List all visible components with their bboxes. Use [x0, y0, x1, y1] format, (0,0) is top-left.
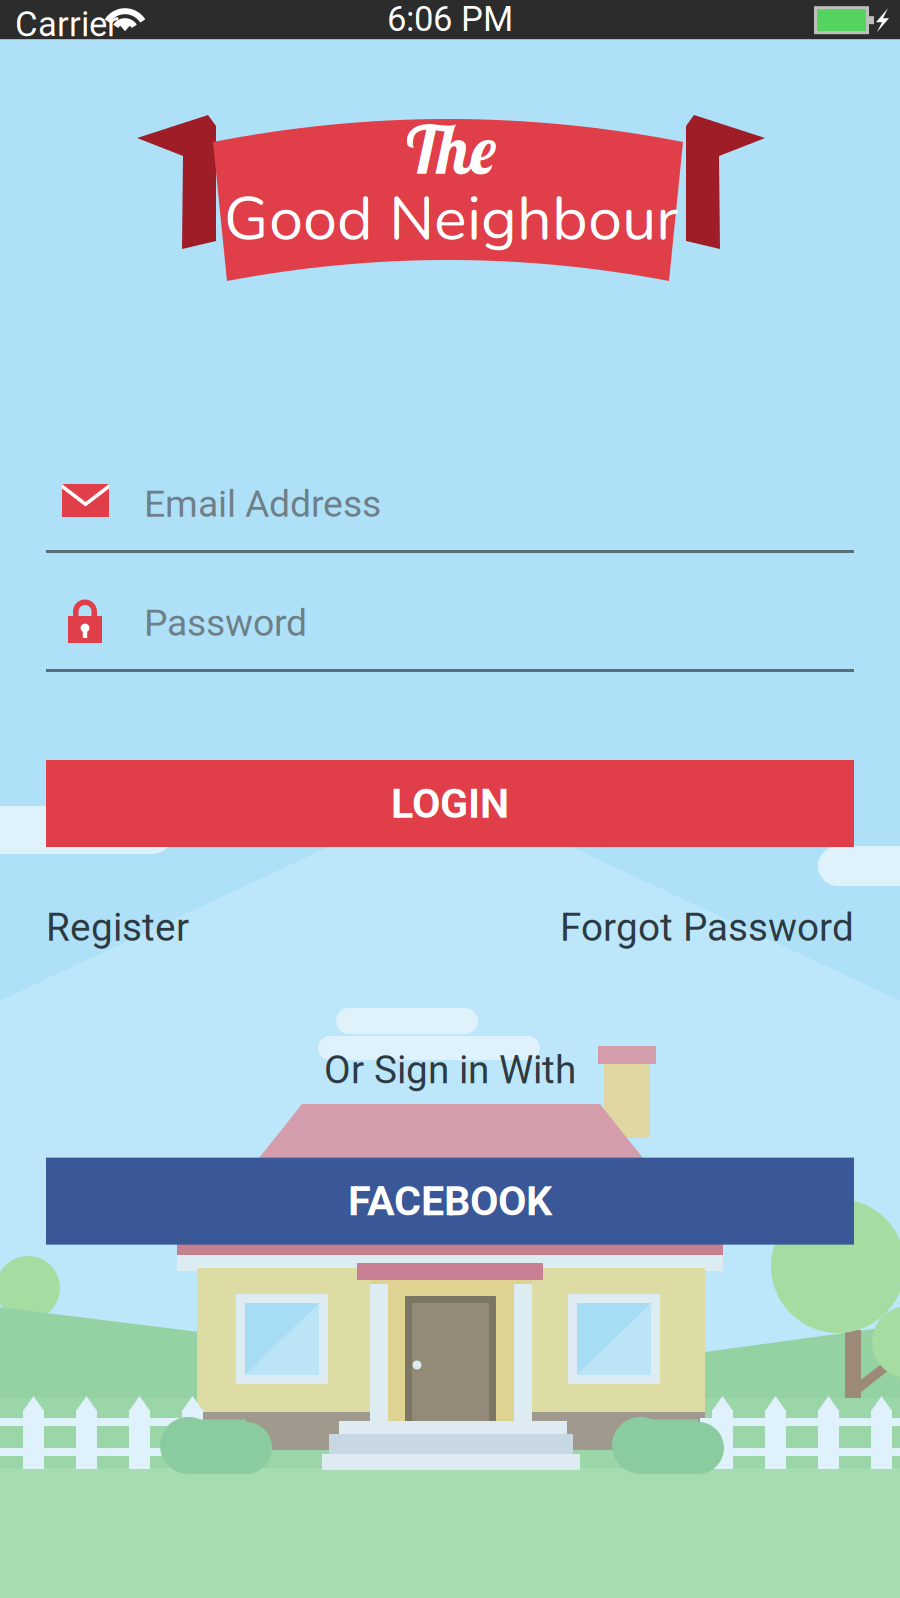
staticText: Good Neighbour	[224, 177, 678, 261]
button[interactable]: Password	[46, 597, 854, 672]
button[interactable]: Register	[46, 905, 189, 950]
button[interactable]: LOGIN	[46, 760, 854, 847]
button[interactable]: Email Address	[46, 478, 854, 553]
staticText: Or Sign in With	[324, 1047, 576, 1093]
staticText: Password	[144, 601, 307, 645]
staticText: LOGIN	[391, 779, 509, 828]
staticText: 6:06 PM	[387, 0, 513, 39]
button[interactable]: FACEBOOK	[46, 1158, 854, 1245]
staticText: Email Address	[144, 482, 381, 526]
staticText: Register	[46, 905, 189, 950]
staticText: Forgot Password	[560, 905, 854, 950]
button[interactable]: Forgot Password	[560, 905, 854, 950]
staticText: Carrier	[15, 4, 119, 45]
staticText: FACEBOOK	[348, 1177, 552, 1225]
staticText: The	[406, 107, 495, 191]
